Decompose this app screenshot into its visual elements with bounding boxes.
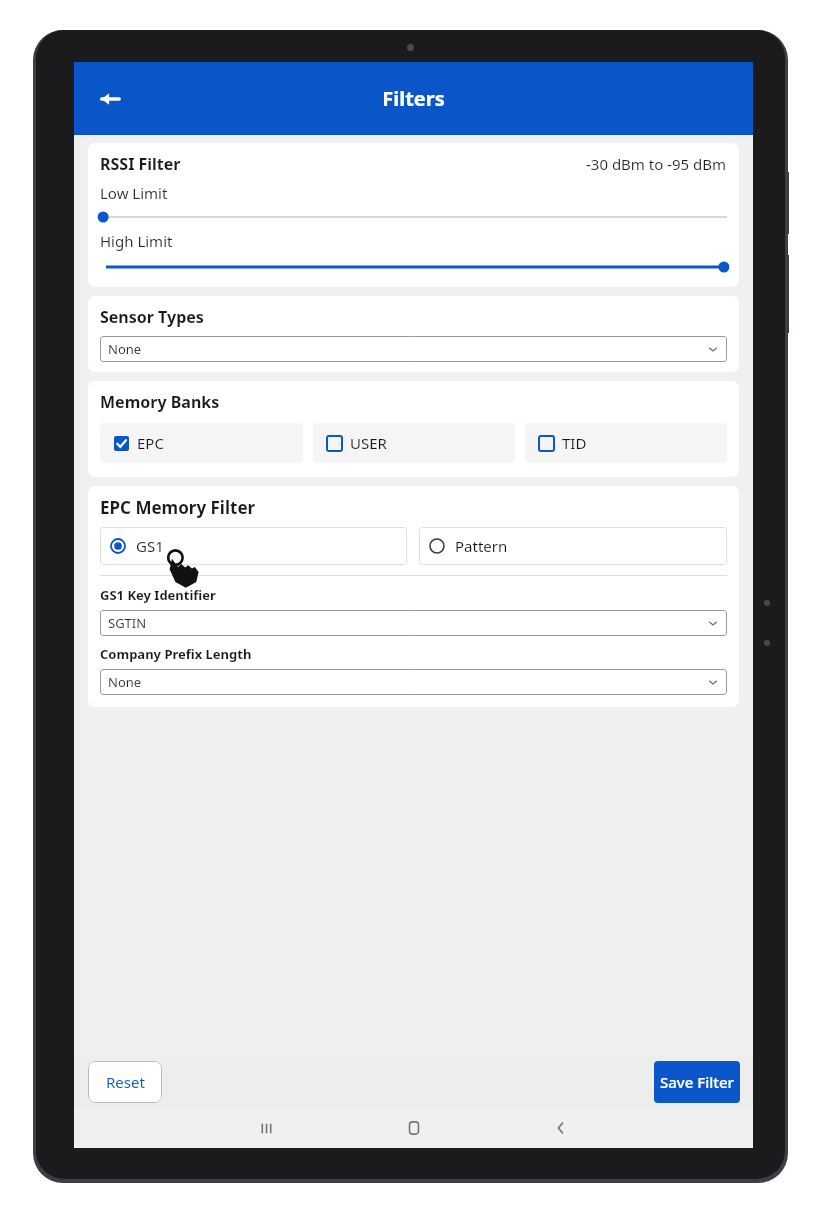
button[interactable]: EPC	[100, 423, 303, 463]
button[interactable]: TID	[525, 423, 727, 463]
button[interactable]: USER	[313, 423, 515, 463]
button[interactable]	[106, 259, 727, 275]
staticText: -30 dBm to -95 dBm	[586, 154, 727, 174]
button[interactable]: Home	[399, 1113, 429, 1143]
staticText: Memory Banks	[100, 391, 220, 413]
staticText: Save Filter	[660, 1072, 734, 1092]
button[interactable]: Recents	[251, 1113, 281, 1143]
button[interactable]: Save Filter	[654, 1061, 740, 1103]
staticText: EPC	[137, 433, 164, 453]
button[interactable]: SGTIN	[100, 610, 727, 636]
staticText: TID	[562, 433, 587, 453]
staticText: USER	[350, 433, 387, 453]
staticText: None	[108, 673, 142, 691]
staticText: Reset	[106, 1072, 145, 1092]
button[interactable]: Reset	[88, 1061, 162, 1103]
staticText: Pattern	[455, 536, 508, 556]
button[interactable]: GS1	[100, 527, 407, 565]
button[interactable]: Back	[92, 81, 128, 117]
button[interactable]	[100, 209, 727, 225]
button[interactable]: Back	[546, 1113, 576, 1143]
staticText: High Limit	[100, 231, 173, 251]
staticText: Low Limit	[100, 183, 168, 203]
button[interactable]: None	[100, 669, 727, 695]
button[interactable]: Pattern	[419, 527, 727, 565]
staticText: GS1	[136, 536, 164, 556]
staticText: RSSI Filter	[100, 153, 181, 175]
staticText: Sensor Types	[100, 306, 204, 328]
staticText: GS1 Key Identifier	[100, 586, 216, 604]
staticText: Filters	[382, 85, 445, 112]
staticText: EPC Memory Filter	[100, 496, 256, 519]
staticText: SGTIN	[108, 614, 147, 632]
staticText: None	[108, 340, 142, 358]
staticText: Company Prefix Length	[100, 645, 252, 663]
button[interactable]: None	[100, 336, 727, 362]
